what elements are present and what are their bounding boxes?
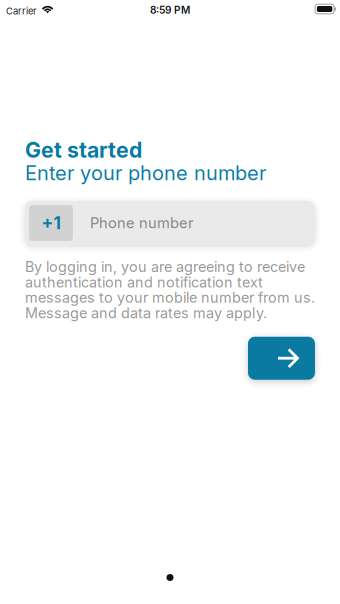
staticText: 8:59 PM [150,4,190,16]
staticText: Get started [25,137,142,163]
button[interactable]: Phone number [73,205,311,241]
staticText: Enter your phone number [25,161,266,185]
staticText: Phone number [90,214,194,232]
button[interactable]: Continue [248,337,315,380]
staticText: By logging in, you are agreeing to recei… [25,258,315,322]
button[interactable]: +1 [29,205,73,241]
staticText: Carrier [6,5,37,17]
staticText: +1 [41,212,60,233]
